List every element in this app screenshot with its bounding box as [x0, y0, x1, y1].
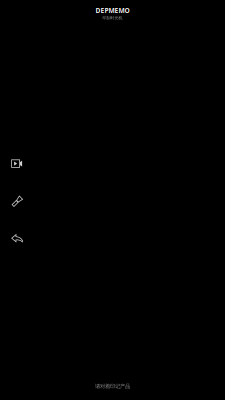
staticText: DEPMEMO: [95, 6, 129, 15]
staticText: 请对着印记产品: [95, 383, 130, 390]
button[interactable]: Flip camera: [11, 233, 33, 251]
button[interactable]: Flashlight: [11, 194, 33, 212]
staticText: 印刻时光机: [102, 15, 122, 20]
button[interactable]: Record video: [11, 158, 33, 176]
